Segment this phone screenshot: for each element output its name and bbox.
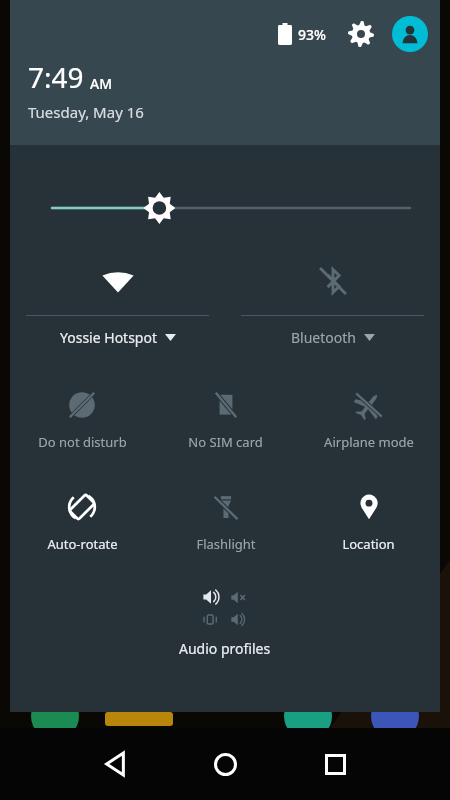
button[interactable]: Flashlight	[154, 487, 297, 553]
button[interactable]: Airplane mode	[297, 385, 440, 451]
button[interactable]: Audio profiles	[10, 587, 440, 658]
staticText: Auto-rotate	[47, 535, 118, 553]
button[interactable]: User profile	[392, 16, 428, 52]
staticText: Flashlight	[196, 535, 256, 553]
button[interactable]: Yossie Hotspot	[10, 261, 225, 347]
button[interactable]: Do not disturb	[10, 385, 154, 451]
button[interactable]: Location	[297, 487, 440, 553]
button[interactable]: Settings	[344, 17, 378, 51]
staticText: 7:49	[28, 58, 84, 96]
staticText: No SIM card	[188, 433, 263, 451]
button[interactable]: Back	[81, 730, 149, 798]
staticText: AM	[90, 74, 113, 93]
button[interactable]: Auto-rotate	[10, 487, 154, 553]
staticText: Tuesday, May 16	[28, 102, 144, 122]
staticText: Airplane mode	[324, 433, 414, 451]
staticText: 93%	[298, 25, 326, 44]
button[interactable]: Home	[191, 730, 259, 798]
staticText: Audio profiles	[179, 639, 271, 658]
staticText: Bluetooth	[291, 328, 356, 347]
staticText: Yossie Hotspot	[60, 328, 157, 347]
button[interactable]: Recents	[301, 730, 369, 798]
button[interactable]: Brightness	[10, 191, 440, 225]
staticText: Do not disturb	[38, 433, 127, 451]
button[interactable]: No SIM card	[154, 385, 297, 451]
staticText: Location	[342, 535, 395, 553]
button[interactable]: Bluetooth	[225, 261, 440, 347]
